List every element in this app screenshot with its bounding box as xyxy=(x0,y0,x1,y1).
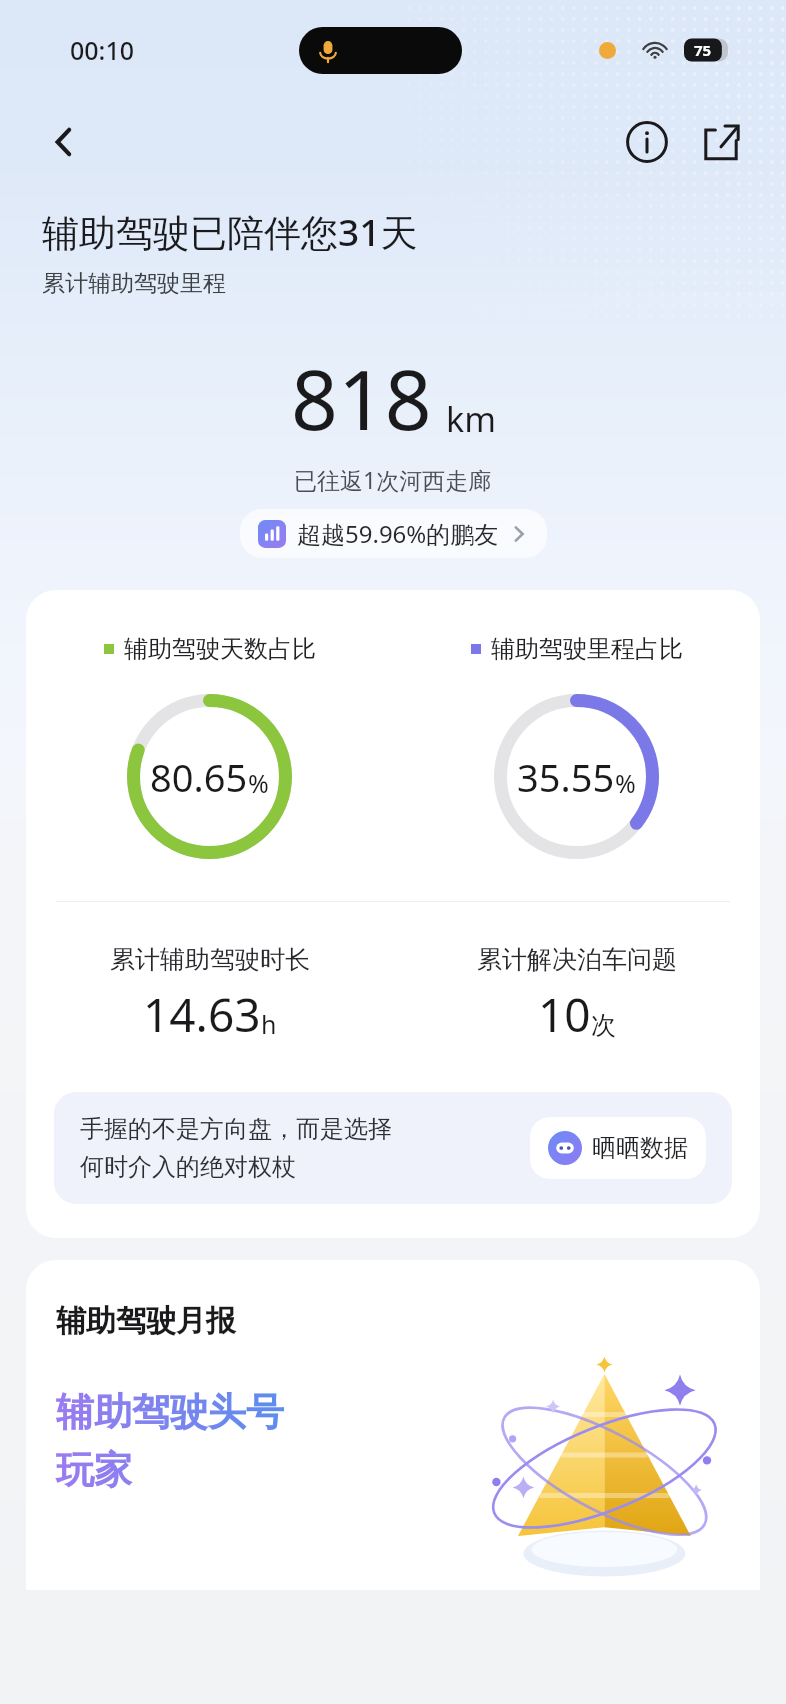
staticText: 手握的不是方向盘，而是选择 xyxy=(80,1114,392,1144)
staticText: 10 xyxy=(538,983,591,1046)
staticText: 818 xyxy=(291,342,432,454)
staticText: % xyxy=(615,766,636,800)
staticText: % xyxy=(248,766,269,800)
staticText: 何时介入的绝对权杖 xyxy=(80,1152,296,1182)
staticText: 00:10 xyxy=(70,33,135,67)
staticText: 累计解决泊车问题 xyxy=(477,944,677,975)
staticText: 辅助驾驶头号 xyxy=(56,1388,284,1436)
staticText: 玩家 xyxy=(56,1446,132,1494)
staticText: 14.63 xyxy=(143,983,261,1046)
staticText: 辅助驾驶里程占比 xyxy=(491,634,683,664)
staticText: 辅助驾驶月报 xyxy=(56,1302,236,1340)
button[interactable]: 晒晒数据 xyxy=(530,1117,706,1179)
staticText: km xyxy=(446,396,496,442)
staticText: 辅助驾驶已陪伴您31天 xyxy=(42,206,418,257)
staticText: 已往返1次河西走廊 xyxy=(294,464,492,495)
staticText: 累计辅助驾驶里程 xyxy=(42,269,226,298)
button[interactable]: 辅助驾驶月报 xyxy=(26,1260,760,1590)
staticText: 超越59.96%的鹏友 xyxy=(297,517,499,550)
button[interactable]: Back xyxy=(34,112,94,172)
button[interactable]: Info xyxy=(618,113,676,171)
staticText: 35.55 xyxy=(517,751,615,803)
button[interactable]: Share xyxy=(692,113,750,171)
staticText: 累计辅助驾驶时长 xyxy=(110,944,310,975)
staticText: h xyxy=(261,1007,277,1041)
staticText: 辅助驾驶天数占比 xyxy=(124,634,316,664)
button[interactable]: 超越59.96%的鹏友 xyxy=(240,509,547,558)
staticText: 晒晒数据 xyxy=(592,1133,688,1163)
staticText: 80.65 xyxy=(150,751,248,803)
staticText: 次 xyxy=(591,1010,616,1041)
staticText: 75 xyxy=(694,40,712,60)
